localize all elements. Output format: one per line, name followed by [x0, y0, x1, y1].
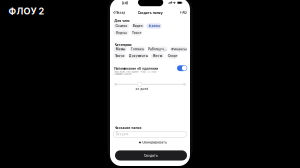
button[interactable]: Ссылки [114, 23, 129, 29]
button[interactable]: Текст [131, 30, 142, 35]
staticText: FAQ [180, 11, 186, 15]
button[interactable]: Готовка [130, 47, 145, 52]
staticText: 9:41 [122, 1, 128, 5]
button[interactable]: Файлы [146, 23, 162, 29]
staticText: Назад [115, 11, 125, 14]
staticText: 30 дней [135, 87, 148, 91]
staticText: Создать папку [138, 11, 163, 15]
staticText: ФЛОУ 2 [8, 6, 44, 17]
staticText: Спорт [168, 54, 177, 58]
staticText: Файлы [149, 24, 160, 28]
button[interactable]: Сгенерировать [139, 141, 167, 144]
staticText: Финансы [171, 47, 186, 51]
staticText: сохранить нужное [114, 73, 131, 76]
button[interactable]: Введите [113, 131, 186, 137]
staticText: Текст [132, 31, 141, 35]
staticText: Документы [129, 54, 148, 58]
button[interactable]: Спорт [167, 53, 178, 58]
button[interactable]: Напоминание об удалении [177, 65, 187, 71]
button[interactable]: Финансы [170, 47, 187, 52]
staticText: Сгенерировать [142, 141, 167, 144]
button[interactable]: Видео [131, 23, 144, 29]
button[interactable]: Мемы [113, 47, 127, 52]
button[interactable]: FAQ [180, 11, 186, 15]
staticText: Для чего: [114, 19, 130, 23]
button[interactable]: Документы [128, 53, 148, 58]
staticText: Категории [114, 43, 131, 47]
button[interactable]: ФЛОУ 2 [8, 6, 44, 17]
staticText: Создать [144, 153, 158, 157]
staticText: Ссылки [115, 24, 127, 28]
staticText: Уведомим тебя заранее, чтобы ты успел [114, 70, 156, 73]
staticText: Места [152, 54, 162, 58]
button[interactable]: Создать [115, 150, 187, 160]
button[interactable]: Места [151, 53, 164, 58]
staticText: Пикчи [114, 54, 124, 58]
button[interactable]: Курсы [114, 30, 129, 35]
staticText: Видео [133, 24, 143, 28]
button[interactable]: Назад [113, 11, 125, 14]
staticText: Мемы [116, 47, 125, 51]
staticText: Напоминание об удалении [114, 67, 158, 70]
staticText: Готовка [131, 47, 144, 51]
staticText: Название папки [115, 126, 142, 130]
button[interactable]: Пикчи [113, 53, 126, 58]
staticText: Курсы [116, 31, 126, 35]
staticText: Работа/учёба [148, 47, 168, 51]
staticText: Введите [116, 133, 129, 136]
button[interactable]: Работа/учёба [148, 47, 168, 52]
